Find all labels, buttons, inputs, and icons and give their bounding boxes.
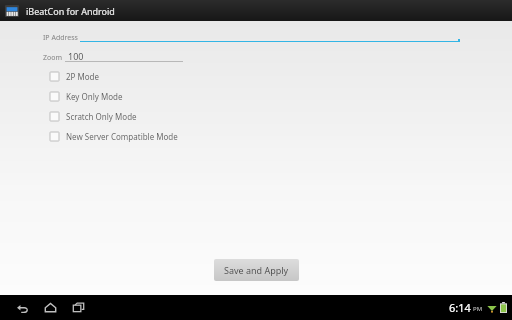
button[interactable]: 2P Mode: [50, 71, 100, 82]
button[interactable]: IP Address: [43, 32, 460, 43]
button[interactable]: Back: [8, 295, 36, 320]
staticText: 2P Mode: [66, 71, 100, 82]
button[interactable]: Recent apps: [64, 295, 92, 320]
staticText: Zoom: [43, 53, 63, 63]
staticText: PM: [473, 305, 483, 313]
staticText: Scratch Only Mode: [66, 111, 137, 122]
staticText: New Server Compatible Mode: [66, 131, 178, 142]
button[interactable]: Status: [449, 300, 507, 315]
button[interactable]: Scratch Only Mode: [50, 111, 137, 122]
button[interactable]: Zoom: [43, 50, 183, 63]
staticText: Key Only Mode: [66, 91, 123, 102]
staticText: 100: [68, 50, 84, 62]
staticText: Save and Apply: [224, 264, 289, 276]
staticText: IP Address: [43, 33, 78, 43]
staticText: 6:14: [449, 300, 471, 315]
button[interactable]: Save and Apply: [214, 259, 299, 281]
button[interactable]: Home: [36, 295, 64, 320]
button[interactable]: New Server Compatible Mode: [50, 131, 178, 142]
button[interactable]: Key Only Mode: [50, 91, 123, 102]
staticText: iBeatCon for Android: [26, 5, 115, 17]
